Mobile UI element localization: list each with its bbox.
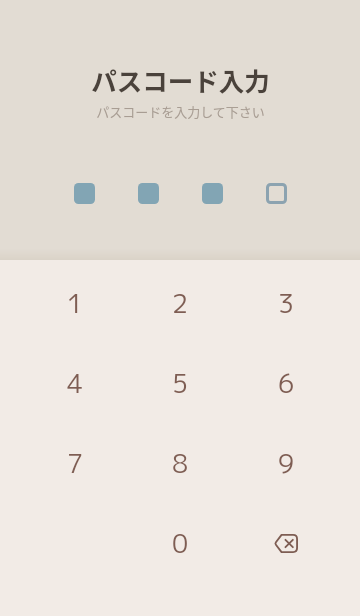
staticText: 2: [172, 285, 189, 321]
button[interactable]: 7: [39, 427, 111, 499]
button[interactable]: 0: [144, 507, 216, 579]
button[interactable]: 3: [250, 267, 322, 339]
staticText: 0: [172, 525, 189, 561]
staticText: パスコードを入力して下さい: [96, 102, 265, 121]
staticText: パスコード入力: [91, 61, 270, 98]
staticText: 3: [278, 285, 295, 321]
button[interactable]: 8: [144, 427, 216, 499]
staticText: 7: [67, 445, 84, 481]
staticText: 4: [67, 365, 84, 401]
button[interactable]: Delete: [250, 507, 322, 579]
button[interactable]: 4: [39, 347, 111, 419]
button[interactable]: 1: [39, 267, 111, 339]
staticText: 9: [278, 445, 295, 481]
button[interactable]: 6: [250, 347, 322, 419]
staticText: 6: [278, 365, 295, 401]
button[interactable]: 2: [144, 267, 216, 339]
staticText: 5: [172, 365, 189, 401]
button[interactable]: 9: [250, 427, 322, 499]
staticText: 8: [172, 445, 189, 481]
button[interactable]: 5: [144, 347, 216, 419]
staticText: 1: [67, 285, 84, 321]
